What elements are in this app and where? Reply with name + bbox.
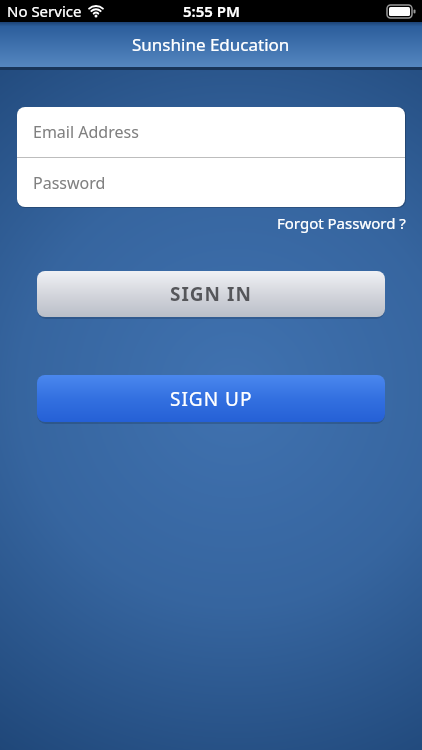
staticText: Email Address	[33, 121, 139, 143]
button[interactable]: Email Address	[17, 107, 405, 157]
staticText: SIGN IN	[170, 281, 252, 307]
button[interactable]: Password	[17, 158, 405, 207]
staticText: Password	[33, 172, 106, 194]
staticText: No Service	[7, 1, 82, 21]
button[interactable]: SIGN UP	[37, 375, 385, 422]
staticText: 5:55 PM	[183, 1, 240, 21]
button[interactable]: SIGN IN	[37, 271, 385, 317]
staticText: SIGN UP	[170, 386, 253, 412]
staticText: Sunshine Education	[132, 33, 290, 56]
button[interactable]: Forgot Password ?	[277, 213, 406, 233]
